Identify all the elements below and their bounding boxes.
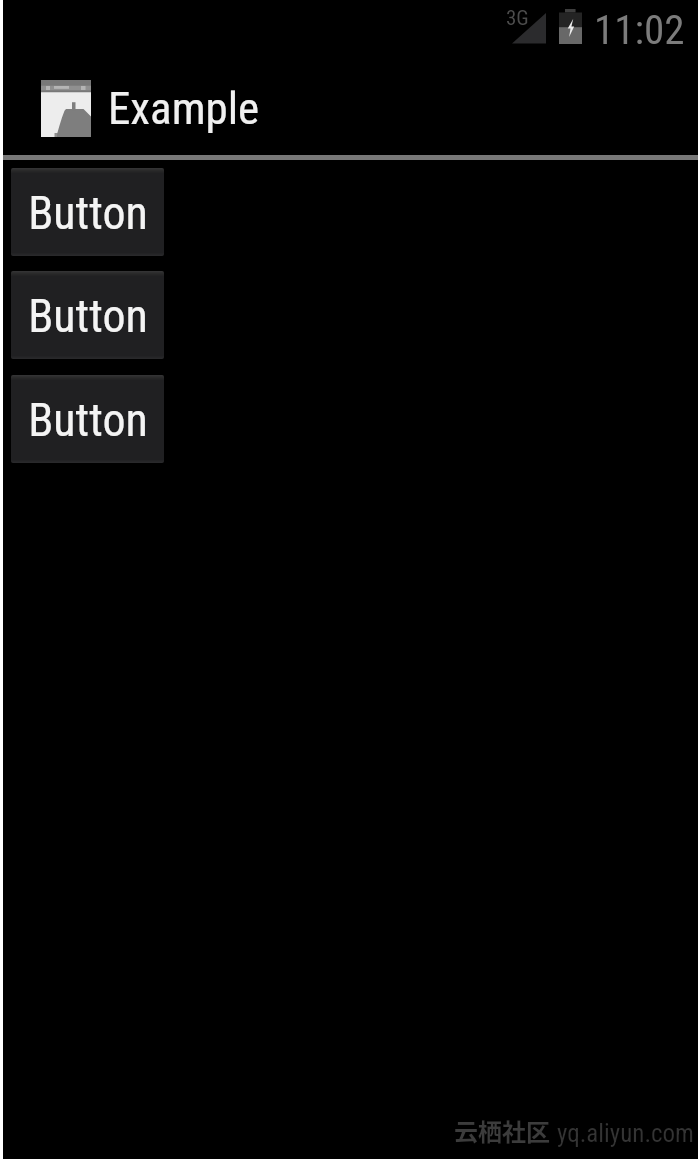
staticText: Button — [28, 393, 148, 447]
button[interactable]: Button — [11, 168, 164, 256]
button[interactable]: App icon — [23, 55, 260, 155]
staticText: Button — [28, 289, 148, 343]
button[interactable]: Button — [11, 375, 164, 463]
staticText: yq.aliyun.com — [557, 1119, 694, 1148]
staticText: 云栖社区 — [454, 1113, 550, 1148]
staticText: 3G — [506, 6, 529, 31]
staticText: Button — [28, 186, 148, 240]
staticText: Example — [108, 82, 260, 135]
staticText: 11:02 — [594, 6, 685, 54]
button[interactable]: Button — [11, 271, 164, 359]
other: App icon — [41, 80, 91, 137]
